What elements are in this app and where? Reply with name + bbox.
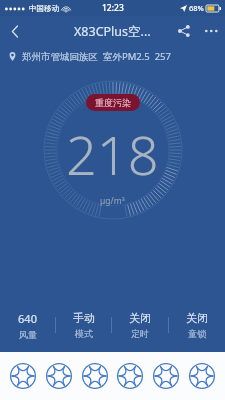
staticText: 218: [66, 117, 159, 191]
button[interactable]: Fan speed option: [43, 360, 75, 392]
staticText: 郑州市管城回族区 室外PM2.5 257: [22, 50, 171, 63]
button[interactable]: Back: [0, 16, 30, 46]
staticText: 中国移动: [29, 4, 59, 13]
staticText: 定时: [131, 328, 149, 339]
staticText: 12:23: [102, 2, 124, 14]
staticText: 模式: [75, 328, 93, 339]
button[interactable]: More options: [197, 17, 225, 45]
button[interactable]: Fan speed option: [114, 360, 146, 392]
staticText: 重度污染: [95, 97, 131, 108]
staticText: 关闭: [129, 311, 151, 325]
button[interactable]: 关闭: [169, 304, 225, 346]
button[interactable]: Share: [171, 18, 197, 44]
button[interactable]: Fan speed option: [79, 360, 111, 392]
staticText: 童锁: [188, 328, 206, 339]
button[interactable]: 重度污染: [86, 94, 140, 111]
staticText: 关闭: [186, 311, 208, 325]
button[interactable]: 640: [0, 304, 55, 346]
staticText: X83CPlus空...: [74, 23, 151, 40]
staticText: 手动: [73, 311, 95, 325]
button[interactable]: Fan speed option: [7, 360, 39, 392]
button[interactable]: 手动: [56, 304, 111, 346]
staticText: 640: [18, 311, 37, 326]
button[interactable]: Fan speed option: [186, 360, 218, 392]
button[interactable]: Fan speed option: [150, 360, 182, 392]
button[interactable]: 郑州市管城回族区 室外PM2.5 257: [0, 46, 225, 66]
button[interactable]: 关闭: [112, 304, 168, 346]
staticText: 68%: [189, 3, 204, 13]
staticText: 风量: [19, 329, 37, 340]
staticText: µg/m³: [100, 195, 125, 207]
